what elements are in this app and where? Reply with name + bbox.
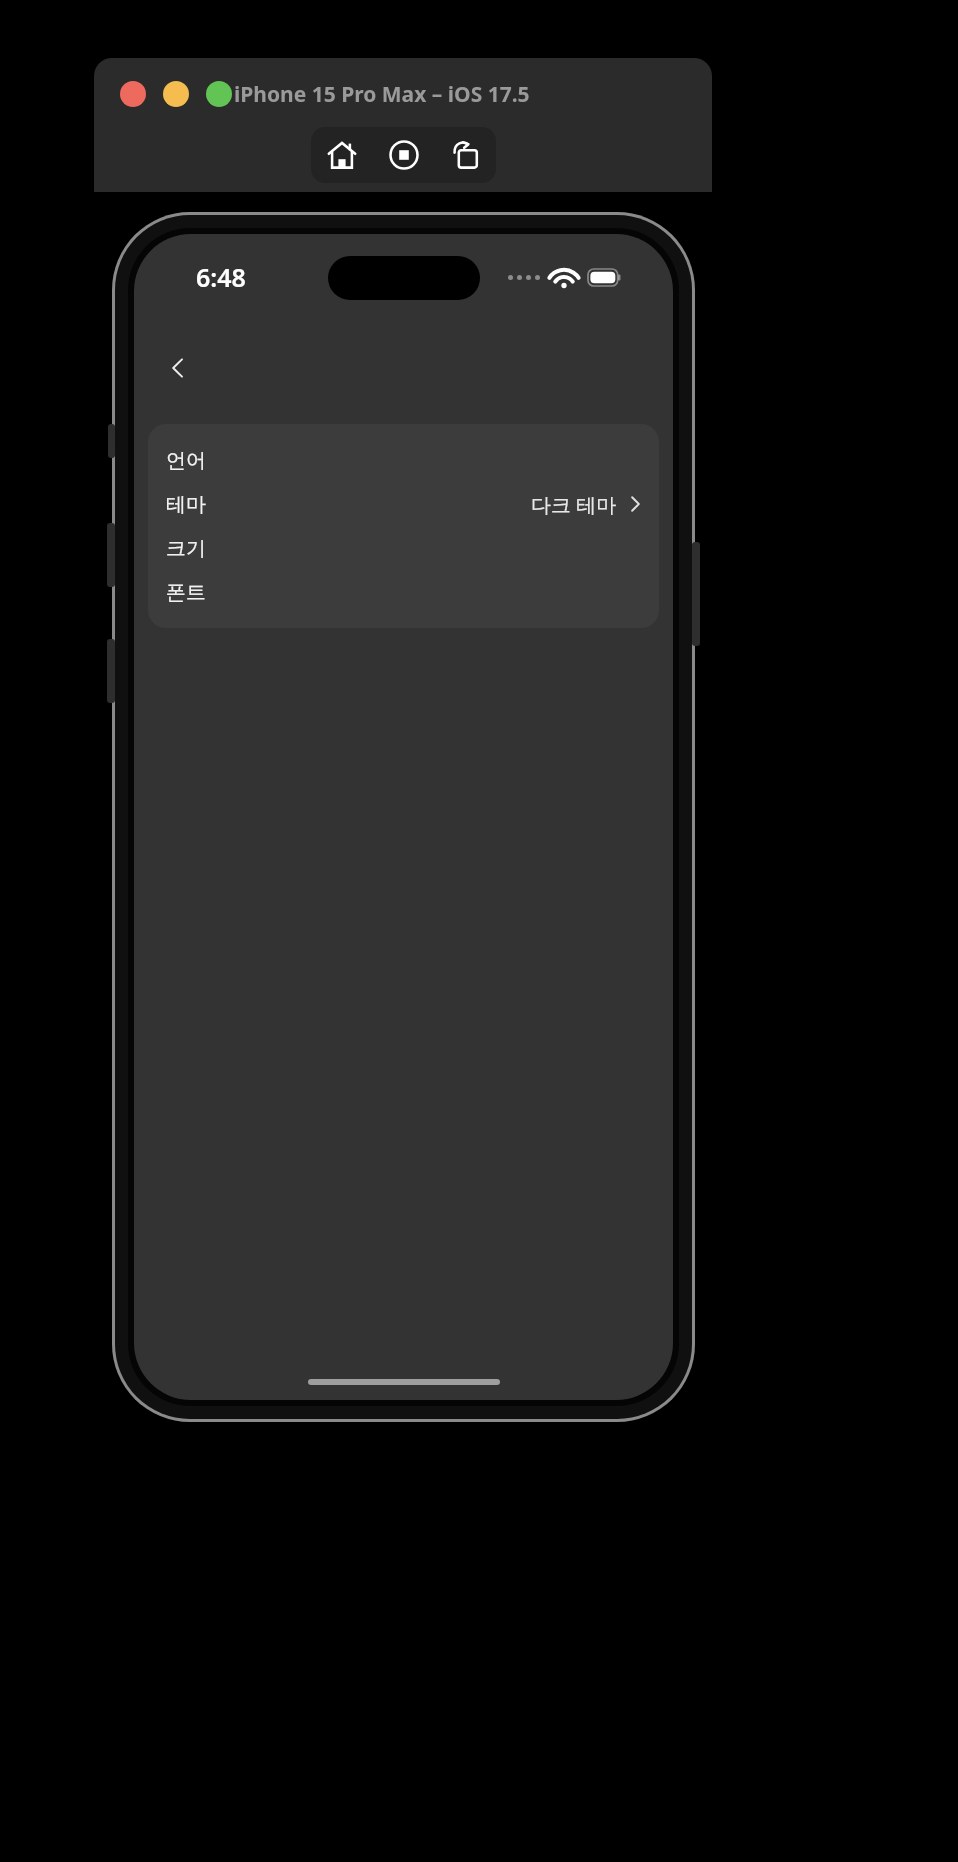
button[interactable]: Record — [385, 136, 423, 174]
button[interactable]: 언어 — [148, 438, 659, 482]
staticText: iPhone 15 Pro Max – iOS 17.5 — [234, 80, 530, 109]
button[interactable]: Rotate — [447, 136, 485, 174]
button[interactable] — [206, 81, 232, 107]
staticText: 언어 — [166, 448, 206, 473]
staticText: 다크 테마 — [531, 491, 617, 518]
button[interactable]: Back — [156, 346, 200, 390]
staticText: 테마 — [166, 492, 206, 517]
button[interactable]: 크기 — [148, 526, 659, 570]
button[interactable]: 테마 — [148, 482, 659, 526]
button[interactable]: 폰트 — [148, 570, 659, 614]
staticText: 크기 — [166, 536, 206, 561]
staticText: 6:48 — [196, 260, 246, 294]
staticText: 폰트 — [166, 580, 206, 605]
button[interactable] — [163, 81, 189, 107]
button[interactable] — [120, 81, 146, 107]
button[interactable]: Home — [323, 136, 361, 174]
